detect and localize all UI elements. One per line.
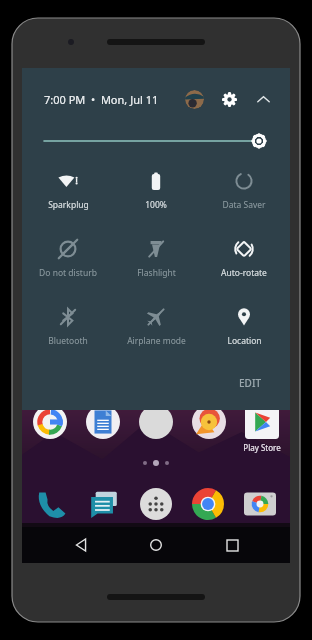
button[interactable]: Sparkplug — [26, 168, 110, 213]
button[interactable]: Brightness — [44, 128, 268, 154]
button[interactable]: Flashlight — [114, 236, 198, 281]
button[interactable]: Chrome — [186, 482, 230, 526]
button[interactable]: Bluetooth — [26, 304, 110, 349]
button[interactable]: All apps — [134, 482, 178, 526]
staticText: Flashlight — [137, 267, 176, 279]
staticText: Airplane mode — [127, 335, 186, 347]
staticText: Sparkplug — [48, 199, 89, 211]
button[interactable]: Data Saver — [202, 168, 286, 213]
button[interactable]: Collapse — [252, 88, 274, 110]
button[interactable]: Airplane mode — [114, 304, 198, 349]
button[interactable]: Messages — [82, 482, 126, 526]
staticText: Auto-rotate — [221, 267, 267, 279]
staticText: 7:00 PM • Mon, Jul 11 — [44, 92, 159, 107]
button[interactable]: Back — [64, 528, 98, 562]
button[interactable]: EDIT — [233, 370, 268, 396]
button[interactable]: User — [185, 90, 204, 109]
button[interactable]: Do not disturb — [26, 236, 110, 281]
button[interactable]: Home — [139, 528, 173, 562]
button[interactable]: App — [131, 405, 181, 439]
button[interactable]: Phone — [30, 482, 74, 526]
button[interactable]: Auto-rotate — [202, 236, 286, 281]
button[interactable]: Location — [202, 304, 286, 349]
staticText: Play Store — [243, 442, 281, 453]
staticText: Bluetooth — [48, 335, 88, 347]
button[interactable]: 100% — [114, 168, 198, 213]
button[interactable]: Settings — [218, 88, 240, 110]
button[interactable]: Recents — [215, 528, 249, 562]
button[interactable]: Play Store — [237, 405, 287, 453]
staticText: Do not disturb — [39, 267, 97, 279]
button[interactable]: Google — [25, 405, 75, 439]
staticText: 100% — [145, 199, 167, 211]
button[interactable]: Camera — [238, 482, 282, 526]
staticText: Data Saver — [222, 199, 266, 211]
button[interactable]: Docs — [78, 405, 128, 439]
staticText: EDIT — [239, 376, 262, 390]
staticText: Location — [227, 335, 262, 347]
button[interactable]: Music — [184, 405, 234, 439]
